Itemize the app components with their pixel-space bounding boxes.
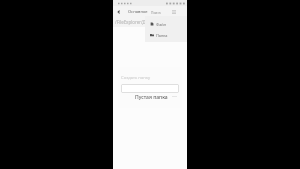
button[interactable]: Back: [113, 6, 124, 17]
button[interactable]: Поиск: [151, 10, 161, 14]
staticText: Создать папку: [121, 75, 151, 81]
staticText: Основное: [128, 9, 148, 15]
staticText: Файл: [156, 22, 167, 27]
staticText: /FileExplorer/Документы: [115, 19, 167, 25]
button[interactable]: More options: [171, 9, 177, 15]
button[interactable]: Папка: [145, 32, 187, 38]
staticText: Поиск: [151, 10, 161, 14]
staticText: Пустая папка: [135, 94, 168, 101]
button[interactable]: Файл: [145, 21, 187, 27]
staticText: Папка: [156, 33, 168, 38]
